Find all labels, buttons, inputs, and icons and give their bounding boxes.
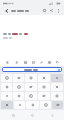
button[interactable]: Key 4 — [51, 74, 63, 82]
button[interactable]: Key 0 — [1, 74, 12, 82]
button[interactable]: Key 2 — [25, 74, 37, 82]
button[interactable]: Image — [30, 59, 37, 66]
button[interactable]: More options — [55, 8, 61, 14]
button[interactable]: Key 16 — [14, 101, 25, 109]
button[interactable]: Link — [38, 59, 45, 66]
button[interactable]: Check — [21, 59, 29, 66]
button[interactable]: Key 15 — [1, 101, 13, 109]
button[interactable]: Key 1 — [13, 74, 24, 82]
button[interactable]: Share — [48, 7, 55, 14]
button[interactable]: Key 7 — [25, 83, 37, 91]
button[interactable]: Key 8 — [38, 83, 50, 91]
button[interactable] — [11, 7, 29, 14]
button[interactable]: Key 13 — [38, 92, 50, 100]
button[interactable]: Home — [25, 110, 39, 120]
button[interactable]: Table — [46, 59, 53, 66]
button[interactable]: Back — [3, 7, 10, 14]
button[interactable]: Key 10 — [1, 92, 12, 100]
button[interactable]: Recents — [6, 110, 20, 120]
button[interactable]: Key 14 — [51, 92, 63, 100]
button[interactable]: Format — [3, 59, 11, 66]
button[interactable]: Undo — [41, 7, 48, 14]
button[interactable]: Undo — [54, 59, 61, 66]
button[interactable]: Key 12 — [25, 92, 37, 100]
button[interactable]: Key 9 — [51, 83, 63, 91]
button[interactable]: Key 17 — [26, 101, 39, 109]
button[interactable]: Key 18 — [40, 101, 51, 109]
button[interactable]: Key 19 — [52, 101, 63, 109]
button[interactable]: Key 6 — [13, 83, 24, 91]
button[interactable]: Key 11 — [13, 92, 24, 100]
button[interactable]: Back — [45, 110, 59, 120]
button[interactable]: List — [12, 59, 20, 66]
button[interactable] — [2, 67, 62, 72]
button[interactable]: Key 5 — [1, 83, 12, 91]
button[interactable]: Key 3 — [38, 74, 50, 82]
